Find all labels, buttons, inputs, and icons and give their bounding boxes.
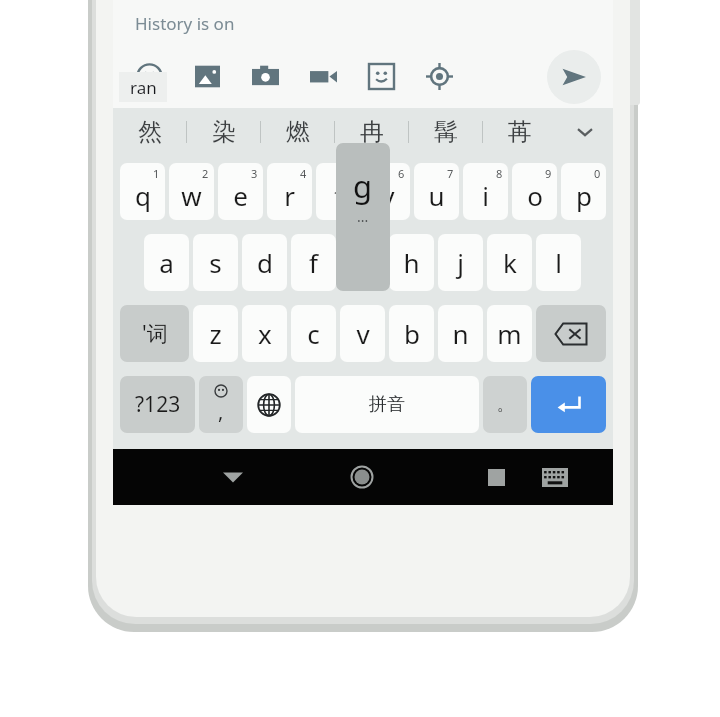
staticText: e — [233, 178, 248, 213]
button[interactable]: Location — [417, 54, 461, 98]
button[interactable]: 苒 — [483, 108, 556, 156]
button[interactable]: 拼音 — [295, 376, 479, 433]
button[interactable]: '词 — [120, 305, 189, 362]
button[interactable]: 3 — [218, 163, 263, 220]
staticText: u — [428, 178, 445, 213]
button[interactable]: 染 — [187, 108, 260, 156]
staticText: 1 — [153, 166, 160, 181]
button[interactable]: Home — [332, 449, 392, 505]
staticText: 髯 — [434, 117, 458, 147]
staticText: g — [353, 165, 373, 207]
button[interactable]: Send — [547, 50, 601, 104]
button[interactable]: Emoji — [127, 54, 171, 98]
button[interactable]: d — [242, 234, 287, 291]
staticText: s — [209, 245, 222, 280]
staticText: z — [209, 316, 222, 351]
button[interactable]: f — [291, 234, 336, 291]
staticText: '词 — [142, 319, 168, 348]
button[interactable]: 4 — [267, 163, 312, 220]
button[interactable]: ?123 — [120, 376, 195, 433]
staticText: t — [334, 178, 344, 213]
staticText: b — [404, 316, 420, 351]
staticText: x — [258, 316, 272, 351]
button[interactable]: m — [487, 305, 532, 362]
button[interactable]: 5 — [316, 163, 361, 220]
button[interactable]: 8 — [463, 163, 508, 220]
button[interactable]: 6 — [365, 163, 410, 220]
staticText: 7 — [447, 166, 454, 181]
button[interactable]: 9 — [512, 163, 557, 220]
button[interactable]: Backspace — [536, 305, 606, 362]
staticText: 6 — [398, 166, 405, 181]
staticText: 。 — [497, 394, 514, 415]
staticText: 然 — [138, 117, 162, 147]
staticText: l — [555, 245, 562, 280]
staticText: j — [457, 245, 464, 280]
button[interactable]: 。 — [483, 376, 527, 433]
staticText: 苒 — [508, 117, 532, 147]
staticText: y — [381, 178, 395, 213]
button[interactable]: n — [438, 305, 483, 362]
button[interactable]: Enter — [531, 376, 606, 433]
staticText: w — [181, 178, 202, 213]
staticText: h — [403, 245, 420, 280]
button[interactable]: b — [389, 305, 434, 362]
staticText: f — [309, 245, 318, 280]
button[interactable]: Switch keyboard — [525, 449, 585, 505]
button[interactable]: 冉 — [335, 108, 408, 156]
button[interactable]: 7 — [414, 163, 459, 220]
staticText: p — [576, 178, 592, 213]
staticText: 3 — [251, 166, 258, 181]
button[interactable]: 然 — [113, 108, 186, 156]
staticText: c — [307, 316, 320, 351]
staticText: q — [135, 178, 151, 213]
staticText: 拼音 — [369, 393, 405, 416]
button[interactable]: Sticker — [359, 54, 403, 98]
button[interactable]: 0 — [561, 163, 606, 220]
staticText: 冉 — [360, 117, 384, 147]
staticText: m — [497, 316, 522, 351]
button[interactable]: a — [144, 234, 189, 291]
staticText: ?123 — [135, 390, 181, 419]
staticText: ... — [357, 207, 369, 226]
staticText: n — [452, 316, 469, 351]
button[interactable]: v — [340, 305, 385, 362]
staticText: o — [527, 178, 543, 213]
button[interactable]: 2 — [169, 163, 214, 220]
staticText: d — [257, 245, 273, 280]
staticText: , — [218, 398, 224, 425]
button[interactable]: j — [438, 234, 483, 291]
staticText: 9 — [545, 166, 552, 181]
button[interactable]: Camera — [243, 54, 287, 98]
staticText: 0 — [594, 166, 601, 181]
button[interactable]: Hide keyboard — [203, 449, 263, 505]
button[interactable]: h — [389, 234, 434, 291]
button[interactable]: Recents — [471, 449, 521, 505]
button[interactable]: x — [242, 305, 287, 362]
button[interactable]: k — [487, 234, 532, 291]
button[interactable]: Video — [301, 54, 345, 98]
button[interactable]: 1 — [120, 163, 165, 220]
button[interactable]: Gallery — [185, 54, 229, 98]
staticText: History is on — [135, 12, 235, 35]
button[interactable]: , — [199, 376, 243, 433]
button[interactable]: s — [193, 234, 238, 291]
button[interactable]: Change language — [247, 376, 291, 433]
button[interactable]: z — [193, 305, 238, 362]
staticText: i — [482, 178, 489, 213]
staticText: k — [503, 245, 517, 280]
staticText: 染 — [212, 117, 236, 147]
button[interactable]: c — [291, 305, 336, 362]
button[interactable]: l — [536, 234, 581, 291]
button[interactable]: More candidates — [556, 108, 613, 156]
staticText: 8 — [496, 166, 503, 181]
staticText: r — [284, 178, 295, 213]
staticText: 4 — [300, 166, 307, 181]
button[interactable]: 燃 — [261, 108, 334, 156]
staticText: 燃 — [286, 117, 310, 147]
staticText: v — [356, 316, 370, 351]
button[interactable]: 髯 — [409, 108, 482, 156]
